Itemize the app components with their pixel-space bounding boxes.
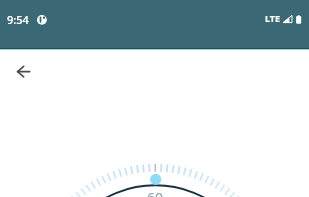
staticText: LTE (265, 12, 281, 24)
staticText: 60 (147, 188, 164, 197)
button[interactable]: Navigate up (11, 59, 35, 83)
staticText: 9:54 (7, 12, 29, 27)
button[interactable]: Duration dial, 60 minutes (0, 0, 309, 197)
